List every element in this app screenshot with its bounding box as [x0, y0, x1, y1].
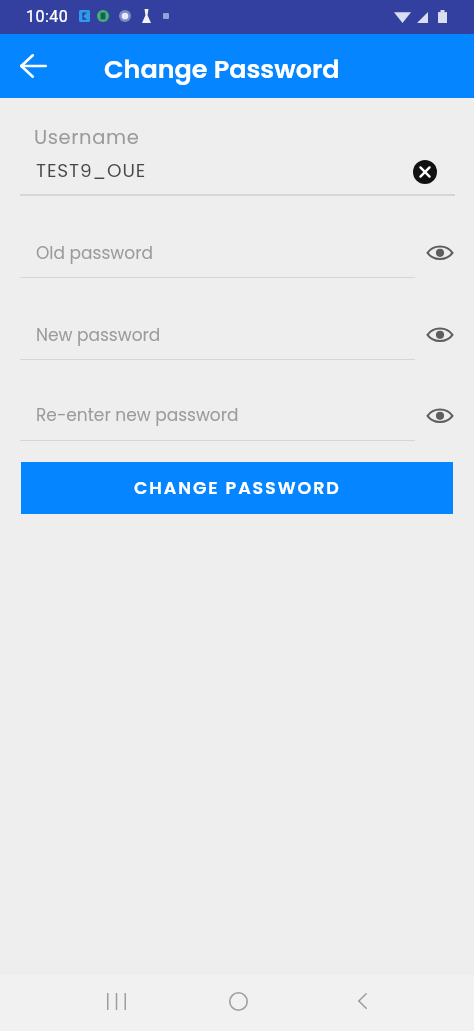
button[interactable]: Recent apps: [94, 979, 138, 1023]
staticText: Old password: [36, 241, 153, 265]
button[interactable]: Clear username: [407, 154, 443, 190]
staticText: Re-enter new password: [36, 403, 239, 427]
staticText: TEST9_OUE: [36, 158, 147, 184]
staticText: CHANGE PASSWORD: [134, 476, 341, 501]
button[interactable]: Show password: [422, 234, 458, 270]
button[interactable]: Show password: [422, 316, 458, 352]
button[interactable]: Back: [11, 44, 55, 88]
staticText: Username: [34, 124, 140, 151]
staticText: Change Password: [104, 51, 340, 87]
staticText: New password: [36, 323, 161, 347]
button[interactable]: CHANGE PASSWORD: [21, 462, 453, 514]
button[interactable]: Home: [216, 979, 260, 1023]
staticText: 10:40: [26, 7, 69, 26]
button[interactable]: Show password: [422, 397, 458, 433]
button[interactable]: Back: [340, 979, 384, 1023]
